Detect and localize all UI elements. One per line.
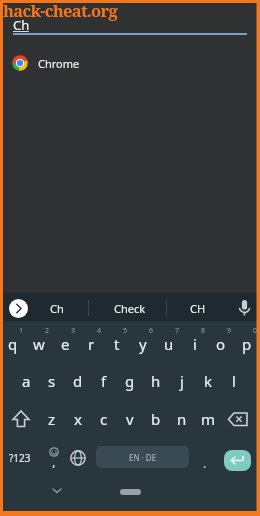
staticText: 2 xyxy=(45,326,50,336)
staticText: h xyxy=(151,371,161,391)
button[interactable]: k xyxy=(195,366,221,396)
button[interactable]: a xyxy=(13,366,39,396)
staticText: i xyxy=(193,334,197,354)
staticText: r xyxy=(88,334,95,354)
button[interactable]: e xyxy=(52,329,78,359)
button[interactable]: c xyxy=(91,404,117,434)
button[interactable]: o xyxy=(208,329,234,359)
staticText: f xyxy=(101,371,107,391)
staticText: Check xyxy=(114,301,146,316)
staticText: Ch xyxy=(13,16,30,34)
button[interactable] xyxy=(224,450,251,471)
staticText: Chrome xyxy=(38,56,80,71)
button[interactable]: m xyxy=(195,404,221,434)
button[interactable]: n xyxy=(169,404,195,434)
staticText: g xyxy=(125,371,135,391)
staticText: Ch xyxy=(50,301,64,316)
staticText: hack-cheat.org xyxy=(3,0,117,21)
button[interactable]: x xyxy=(65,404,91,434)
staticText: . xyxy=(203,455,207,471)
button[interactable]: g xyxy=(117,366,143,396)
button[interactable] xyxy=(68,448,88,468)
button[interactable]: q xyxy=(0,329,26,359)
button[interactable]: z xyxy=(39,404,65,434)
staticText: m xyxy=(201,409,216,429)
staticText: 4 xyxy=(97,326,102,336)
staticText: u xyxy=(164,334,174,354)
staticText: y xyxy=(139,334,147,354)
staticText: t xyxy=(114,334,120,354)
staticText: EN · DE xyxy=(129,452,157,463)
staticText: d xyxy=(73,371,83,391)
button[interactable]: EN · DE xyxy=(96,446,189,468)
staticText: 8 xyxy=(201,326,206,336)
staticText: 1 xyxy=(19,326,24,336)
staticText: e xyxy=(61,334,70,354)
button[interactable]: p xyxy=(234,329,260,359)
staticText: n xyxy=(177,409,187,429)
button[interactable] xyxy=(8,406,34,432)
button[interactable]: f xyxy=(91,366,117,396)
button[interactable]: v xyxy=(117,404,143,434)
staticText: s xyxy=(48,371,56,391)
button[interactable]: Chrome xyxy=(0,48,260,78)
button[interactable] xyxy=(120,489,141,495)
button[interactable]: i xyxy=(182,329,208,359)
staticText: c xyxy=(100,409,108,429)
button[interactable]: l xyxy=(221,366,247,396)
button[interactable] xyxy=(234,298,255,319)
staticText: ?123 xyxy=(9,451,31,465)
button[interactable] xyxy=(225,408,251,434)
staticText: k xyxy=(204,371,213,391)
staticText: 3 xyxy=(71,326,76,336)
staticText: w xyxy=(33,334,45,354)
staticText: v xyxy=(126,409,134,429)
staticText: b xyxy=(151,409,161,429)
staticText: 7 xyxy=(175,326,180,336)
button[interactable]: . xyxy=(197,451,213,475)
button[interactable]: CH xyxy=(173,297,223,319)
button[interactable] xyxy=(42,444,66,472)
button[interactable]: u xyxy=(156,329,182,359)
staticText: 0 xyxy=(253,326,258,336)
button[interactable]: b xyxy=(143,404,169,434)
staticText: 6 xyxy=(149,326,154,336)
button[interactable]: t xyxy=(104,329,130,359)
staticText: CH xyxy=(190,301,206,316)
staticText: q xyxy=(8,334,18,354)
button[interactable]: d xyxy=(65,366,91,396)
button[interactable]: Ch xyxy=(32,297,82,319)
button[interactable]: s xyxy=(39,366,65,396)
staticText: l xyxy=(232,371,236,391)
button[interactable]: w xyxy=(26,329,52,359)
staticText: z xyxy=(48,409,56,429)
staticText: p xyxy=(242,334,252,354)
button[interactable] xyxy=(9,299,28,318)
button[interactable]: r xyxy=(78,329,104,359)
button[interactable] xyxy=(48,483,66,497)
button[interactable]: Check xyxy=(100,297,160,319)
staticText: x xyxy=(74,409,82,429)
staticText: 5 xyxy=(123,326,128,336)
button[interactable]: h xyxy=(143,366,169,396)
staticText: 9 xyxy=(227,326,232,336)
button[interactable]: j xyxy=(169,366,195,396)
staticText: o xyxy=(216,334,226,354)
staticText: j xyxy=(180,371,184,391)
button[interactable]: y xyxy=(130,329,156,359)
button[interactable]: ?123 xyxy=(3,448,37,468)
staticText: a xyxy=(22,371,31,391)
